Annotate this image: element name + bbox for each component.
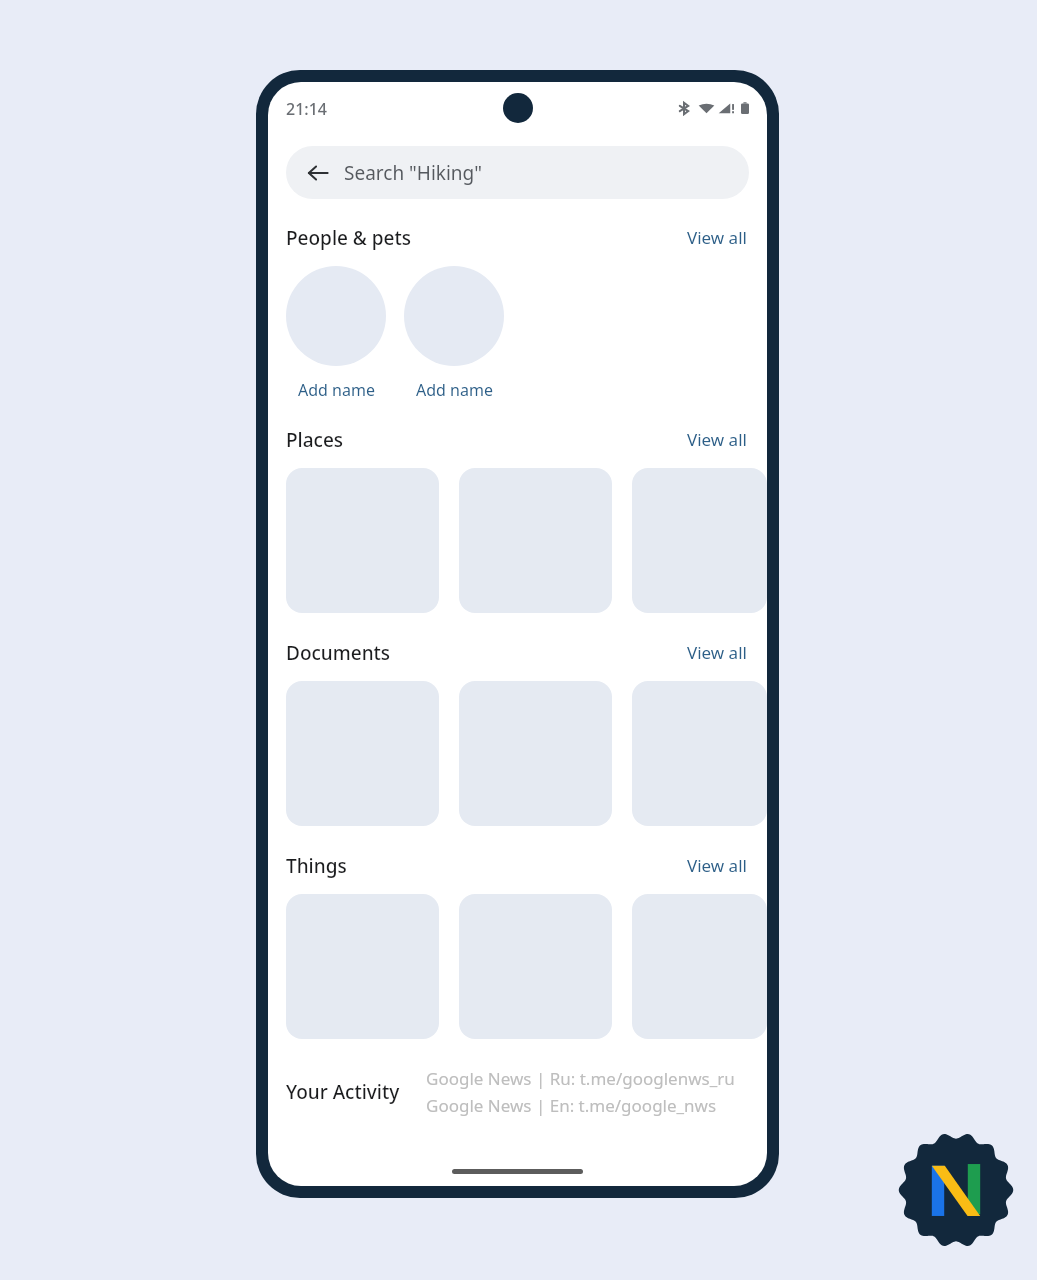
staticText: View all — [687, 428, 747, 451]
staticText: Add name — [298, 379, 375, 401]
button[interactable]: View all — [685, 224, 749, 251]
staticText: Search "Hiking" — [344, 160, 483, 186]
staticText: Google News | En: t.me/google_nws — [426, 1094, 717, 1117]
staticText: View all — [687, 226, 747, 249]
staticText: Documents — [286, 640, 391, 666]
staticText: 21:14 — [286, 98, 327, 120]
button[interactable]: View all — [685, 639, 749, 666]
button[interactable]: Add name — [286, 266, 386, 401]
staticText: Google News | Ru: t.me/googlenws_ru — [426, 1067, 735, 1090]
staticText: Your Activity — [286, 1079, 400, 1105]
button[interactable]: View all — [685, 852, 749, 879]
staticText: Places — [286, 427, 344, 453]
button[interactable]: Add name — [404, 266, 504, 401]
staticText: Add name — [416, 379, 493, 401]
button[interactable]: Back — [286, 146, 749, 199]
button[interactable]: View all — [685, 426, 749, 453]
other: Back — [306, 161, 330, 185]
staticText: Things — [286, 853, 347, 879]
staticText: View all — [687, 641, 747, 664]
staticText: People & pets — [286, 225, 412, 251]
staticText: View all — [687, 854, 747, 877]
